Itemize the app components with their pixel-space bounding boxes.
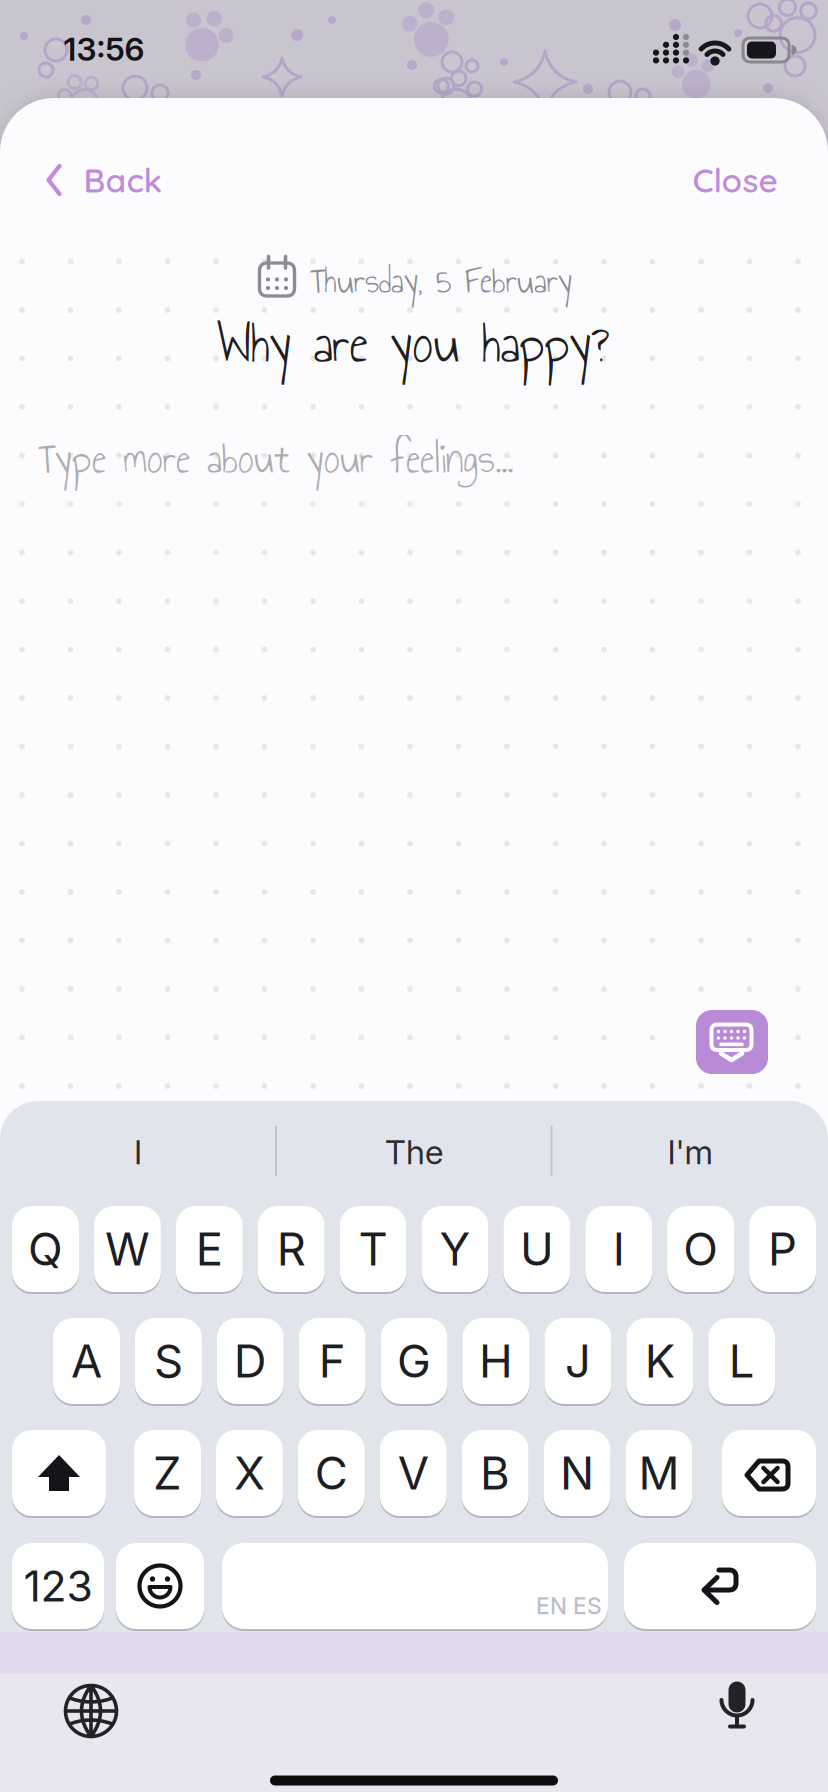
button[interactable]: H [460,1315,531,1407]
button[interactable]: Y [419,1203,490,1295]
staticText: Close [692,159,777,201]
staticText: Z [153,1446,182,1500]
button[interactable]: Dismiss Keyboard [696,1010,768,1074]
button[interactable]: A [51,1315,122,1407]
button[interactable]: The [289,1114,539,1190]
button[interactable]: G [379,1315,450,1407]
staticText: U [520,1222,554,1276]
staticText: 123 [23,1560,92,1612]
staticText: A [71,1334,102,1388]
button[interactable]: K [624,1315,695,1407]
staticText: The [385,1132,443,1172]
button[interactable]: U [501,1203,572,1295]
button[interactable]: B [460,1427,531,1519]
button[interactable]: Close [692,159,777,201]
button[interactable]: N [541,1427,612,1519]
button[interactable]: Space [220,1540,610,1632]
staticText: K [645,1334,675,1388]
button[interactable]: F [297,1315,368,1407]
button[interactable]: I [13,1114,263,1190]
staticText: X [234,1446,265,1500]
staticText: I [134,1132,142,1172]
button[interactable]: Delete [720,1427,818,1519]
staticText: C [315,1446,348,1500]
staticText: N [560,1446,594,1500]
staticText: EN ES [536,1592,602,1620]
button[interactable]: W [92,1203,163,1295]
button[interactable]: O [665,1203,736,1295]
button[interactable]: X [214,1427,285,1519]
staticText: T [359,1222,388,1276]
staticText: Back [83,159,162,201]
button[interactable]: 123 [10,1540,106,1632]
button[interactable]: Q [10,1203,81,1295]
staticText: H [479,1334,513,1388]
staticText: I'm [667,1132,712,1172]
button[interactable]: S [133,1315,204,1407]
staticText: D [234,1334,267,1388]
button[interactable]: M [623,1427,694,1519]
staticText: G [397,1334,431,1388]
button[interactable]: V [378,1427,449,1519]
staticText: W [105,1222,150,1276]
staticText: B [480,1446,510,1500]
button[interactable]: D [215,1315,286,1407]
staticText: M [638,1446,679,1500]
button[interactable]: C [296,1427,367,1519]
button[interactable]: Emoji [114,1540,206,1632]
button[interactable]: P [747,1203,818,1295]
button[interactable]: R [256,1203,327,1295]
staticText: Why are you happy? [216,303,609,385]
staticText: V [398,1446,429,1500]
staticText: Thursday, 5 February [310,254,572,308]
button[interactable]: Return [622,1540,818,1632]
button[interactable]: Next Keyboard [64,1684,118,1738]
staticText: 13:56 [63,30,144,68]
button[interactable]: J [542,1315,613,1407]
button[interactable]: Dictation [709,1678,765,1738]
button[interactable]: L [706,1315,777,1407]
staticText: E [196,1222,223,1276]
staticText: F [319,1334,346,1388]
staticText: Q [28,1222,63,1276]
staticText: R [277,1222,306,1276]
button[interactable]: Z [132,1427,203,1519]
button[interactable]: I'm [565,1114,815,1190]
staticText: J [565,1334,591,1388]
staticText: Type more about your feelings... [38,427,513,491]
staticText: I [613,1222,625,1276]
button[interactable]: Back [45,159,162,201]
button[interactable]: I [583,1203,654,1295]
staticText: P [768,1222,797,1276]
button[interactable]: T [338,1203,409,1295]
button[interactable]: E [174,1203,245,1295]
staticText: O [683,1222,718,1276]
staticText: S [154,1334,183,1388]
button[interactable]: Shift [10,1427,108,1519]
staticText: Y [439,1222,470,1276]
staticText: L [729,1334,755,1388]
